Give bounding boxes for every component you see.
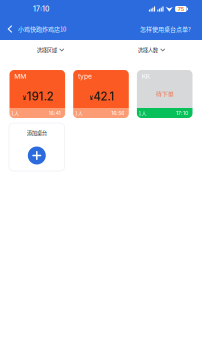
staticText: 16:56 [111, 110, 124, 116]
staticText: 选择区域 [37, 46, 57, 54]
staticText: 17:10 [33, 5, 49, 13]
staticText: 1人 [75, 109, 83, 117]
button[interactable]: 怎样使用桌台点单? [140, 22, 202, 36]
staticText: 16:41 [48, 110, 60, 116]
staticText: 小鸡快跑炸鸡店10 [18, 25, 66, 33]
staticText: 1人 [11, 109, 19, 117]
staticText: MM [14, 72, 26, 80]
button[interactable]: 添加桌台 [9, 123, 65, 171]
staticText: KK [142, 72, 150, 80]
button[interactable]: KK [137, 70, 192, 118]
button[interactable]: MM [9, 70, 65, 118]
staticText: 添加桌台 [27, 129, 47, 137]
staticText: 75 [178, 6, 184, 12]
staticText: 怎样使用桌台点单? [140, 25, 191, 33]
staticText: 待下单 [156, 89, 174, 98]
button[interactable]: 选择区域 [0, 40, 101, 60]
button[interactable]: 小鸡快跑炸鸡店10 [0, 22, 66, 36]
staticText: 17:10 [176, 110, 188, 116]
button[interactable]: 选择人数 [101, 40, 202, 60]
staticText: type [78, 72, 92, 80]
staticText: 1人 [138, 109, 146, 117]
staticText: 选择人数 [138, 46, 158, 54]
staticText: ¥42.1 [89, 90, 114, 103]
button[interactable]: type [73, 70, 129, 118]
staticText: ¥191.2 [23, 90, 54, 103]
